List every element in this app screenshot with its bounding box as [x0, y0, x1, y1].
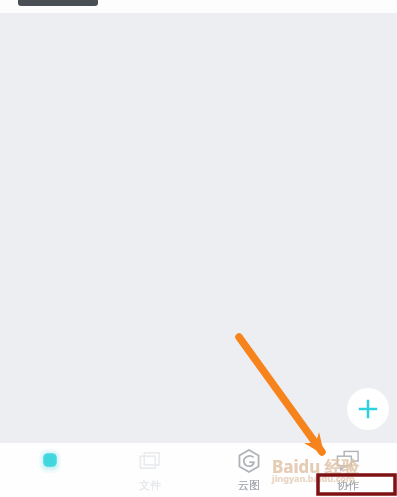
button[interactable]: Home [0, 443, 100, 497]
button[interactable]: Cloud map [199, 443, 298, 497]
staticText: 云图 [238, 478, 260, 492]
staticText: 文件 [139, 478, 161, 492]
button[interactable]: Create new [347, 388, 389, 430]
button[interactable]: Collaboration [298, 443, 397, 497]
button[interactable]: Files [100, 443, 199, 497]
staticText: 协作 [337, 478, 359, 492]
staticText: jingyan.baidu.com [272, 472, 355, 484]
staticText: Baidu 经验 [272, 455, 359, 478]
